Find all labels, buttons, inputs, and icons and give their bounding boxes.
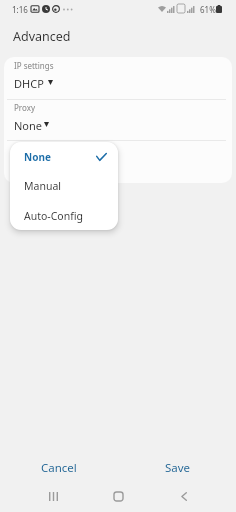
button[interactable]: IP settings bbox=[4, 57, 232, 99]
button[interactable]: None bbox=[10, 142, 118, 171]
button[interactable]: Home bbox=[99, 482, 137, 510]
staticText: IP settings bbox=[14, 60, 54, 71]
button[interactable]: Save bbox=[155, 459, 200, 477]
staticText: Manual bbox=[24, 179, 61, 193]
button[interactable]: Manual bbox=[10, 171, 118, 200]
staticText: Save bbox=[165, 460, 191, 476]
staticText: 61% bbox=[200, 4, 216, 15]
staticText: DHCP bbox=[14, 76, 44, 91]
button[interactable]: Back bbox=[165, 482, 203, 510]
staticText: None bbox=[14, 118, 43, 133]
button[interactable]: Cancel bbox=[33, 459, 84, 477]
button[interactable]: Auto-Config bbox=[10, 201, 118, 230]
staticText: Advanced bbox=[13, 28, 71, 45]
staticText: Auto-Config bbox=[24, 209, 83, 223]
staticText: Proxy bbox=[14, 102, 35, 113]
button[interactable]: Proxy bbox=[4, 99, 232, 141]
staticText: Cancel bbox=[41, 460, 77, 476]
button[interactable]: Recent apps bbox=[34, 482, 72, 510]
staticText: 1:16 bbox=[12, 4, 28, 15]
staticText: None bbox=[24, 150, 51, 164]
